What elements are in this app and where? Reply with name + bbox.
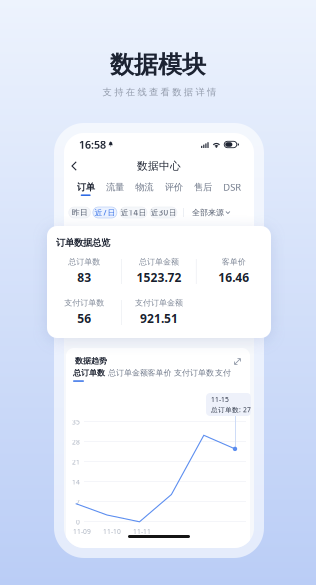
- button[interactable]: 近30日: [150, 207, 177, 218]
- staticText: 14: [72, 477, 80, 486]
- staticText: 16.46: [218, 269, 249, 285]
- button[interactable]: DSR: [218, 180, 247, 197]
- staticText: 支持在线查看数据详情: [103, 86, 216, 98]
- staticText: 总订单数: 27: [211, 405, 251, 414]
- button[interactable]: 近14日: [120, 207, 147, 218]
- button[interactable]: 客单价: [147, 368, 171, 382]
- staticText: DSR: [223, 181, 241, 193]
- staticText: 昨日: [72, 208, 88, 217]
- staticText: 近30日: [150, 207, 176, 218]
- staticText: 11-09: [73, 527, 91, 536]
- button[interactable]: 全部来源: [192, 207, 230, 218]
- staticText: 921.51: [140, 310, 178, 326]
- staticText: 数据趋势: [75, 356, 107, 366]
- staticText: 7: [76, 497, 80, 506]
- staticText: 11-10: [103, 527, 121, 536]
- button[interactable]: 支付订单数: [174, 368, 214, 382]
- staticText: 客单价: [147, 368, 171, 378]
- staticText: 0: [76, 517, 80, 526]
- button[interactable]: Back: [64, 157, 84, 175]
- staticText: 11-15: [211, 395, 229, 404]
- staticText: 售后: [194, 181, 212, 193]
- staticText: 客单价: [222, 257, 246, 267]
- button[interactable]: 昨日: [69, 207, 90, 218]
- staticText: 数据模块: [110, 50, 206, 79]
- staticText: 评价: [165, 181, 183, 193]
- button[interactable]: 流量: [100, 180, 130, 197]
- staticText: 数据中心: [137, 159, 181, 172]
- staticText: 订单数据总览: [56, 237, 110, 248]
- staticText: 订单: [77, 181, 95, 193]
- button[interactable]: 近7日: [93, 207, 117, 218]
- button[interactable]: 订单: [71, 180, 100, 197]
- staticText: 11-11: [133, 527, 151, 536]
- staticText: 总订单金额: [108, 368, 148, 378]
- staticText: 56: [77, 310, 91, 326]
- staticText: 支付订单金额: [135, 298, 183, 308]
- staticText: 总订单数: [73, 368, 105, 378]
- staticText: 1523.72: [137, 269, 182, 285]
- staticText: 近14日: [120, 207, 146, 218]
- staticText: 83: [77, 269, 91, 285]
- button[interactable]: 售后: [188, 180, 218, 197]
- staticText: 全部来源: [192, 208, 224, 217]
- staticText: 物流: [135, 181, 153, 193]
- staticText: 流量: [106, 181, 124, 193]
- staticText: 16:58: [79, 137, 106, 152]
- staticText: 近7日: [94, 207, 115, 218]
- staticText: 总订单金额: [139, 257, 179, 267]
- button[interactable]: 总订单金额: [108, 368, 148, 382]
- staticText: 支付: [215, 368, 231, 378]
- button[interactable]: 支付: [215, 368, 231, 382]
- button[interactable]: 评价: [159, 180, 188, 197]
- staticText: 28: [72, 437, 80, 446]
- button[interactable]: 物流: [130, 180, 159, 197]
- staticText: 总订单数: [68, 257, 100, 267]
- button[interactable]: Expand chart: [231, 355, 244, 368]
- button[interactable]: 总订单数: [73, 368, 105, 382]
- staticText: 21: [72, 457, 80, 466]
- staticText: 支付订单数: [64, 298, 104, 308]
- staticText: 35: [72, 417, 80, 426]
- staticText: 支付订单数: [174, 368, 214, 378]
